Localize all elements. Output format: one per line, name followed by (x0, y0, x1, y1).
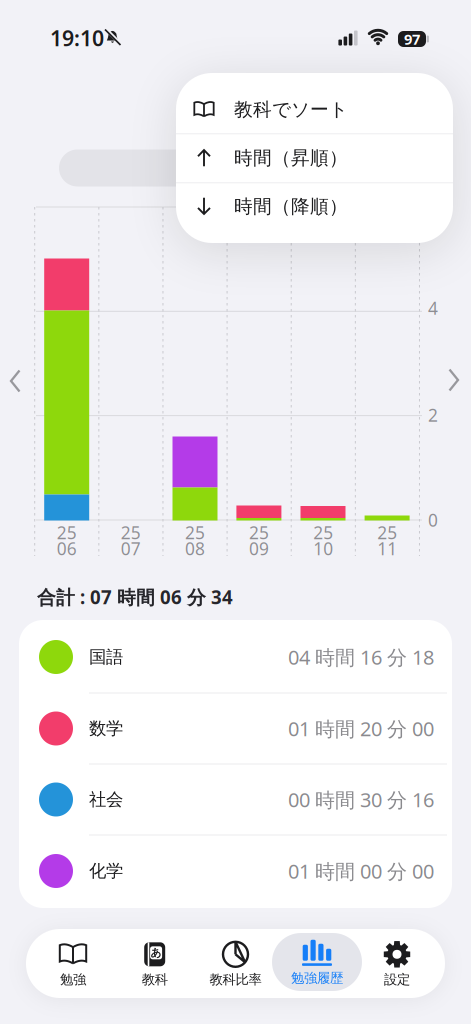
staticText: 04 時間 16 分 18 (288, 644, 434, 670)
staticText: 00 時間 30 分 16 (288, 786, 434, 813)
staticText: 国語 (89, 646, 123, 668)
staticText: 25 (121, 521, 141, 544)
button[interactable]: 勉強 (58, 942, 88, 988)
staticText: 教科 (142, 971, 168, 988)
staticText: 97 (404, 29, 420, 49)
staticText: 19:10 (50, 24, 104, 52)
button[interactable]: 時間（昇順） (176, 134, 453, 182)
staticText: 時間（昇順） (234, 146, 348, 169)
staticText: 4 (428, 296, 438, 319)
staticText: 0 (428, 508, 438, 531)
staticText: 社会 (89, 789, 123, 810)
staticText: 07 (121, 537, 141, 560)
staticText: 設定 (384, 971, 410, 988)
button[interactable]: Previous period (10, 370, 20, 391)
staticText: あ (151, 946, 162, 959)
staticText: 25 (185, 521, 205, 544)
staticText: 25 (57, 521, 77, 544)
button[interactable]: 期間を選択 (59, 149, 319, 186)
staticText: 25 (313, 521, 333, 544)
staticText: 化学 (89, 860, 123, 882)
staticText: 教科比率 (209, 971, 261, 988)
button[interactable]: 勉強履歴 (291, 940, 343, 986)
staticText: 勉強 (60, 971, 86, 988)
staticText: 合計 : 07 時間 06 分 34 (37, 585, 233, 609)
staticText: 08 (185, 537, 205, 560)
button[interactable]: 時間（降順） (176, 182, 453, 230)
staticText: 25 (249, 521, 269, 544)
staticText: 11 (377, 537, 397, 560)
button[interactable]: 教科でソート (176, 85, 453, 133)
staticText: 10 (313, 537, 333, 560)
staticText: 01 時間 00 分 00 (288, 858, 434, 884)
staticText: 数学 (89, 718, 123, 739)
staticText: 勉強履歴 (291, 970, 343, 986)
staticText: 06 (57, 537, 77, 560)
button[interactable]: 設定 (382, 942, 412, 988)
staticText: 時間（降順） (234, 195, 348, 218)
staticText: 2 (428, 403, 438, 426)
button[interactable]: あ (140, 942, 170, 988)
button[interactable]: Next period (448, 369, 458, 390)
staticText: 25 (377, 521, 397, 544)
button[interactable]: 教科比率 (209, 942, 261, 988)
staticText: 教科でソート (234, 98, 348, 121)
staticText: 01 時間 20 分 00 (288, 715, 434, 742)
staticText: 09 (249, 537, 269, 560)
